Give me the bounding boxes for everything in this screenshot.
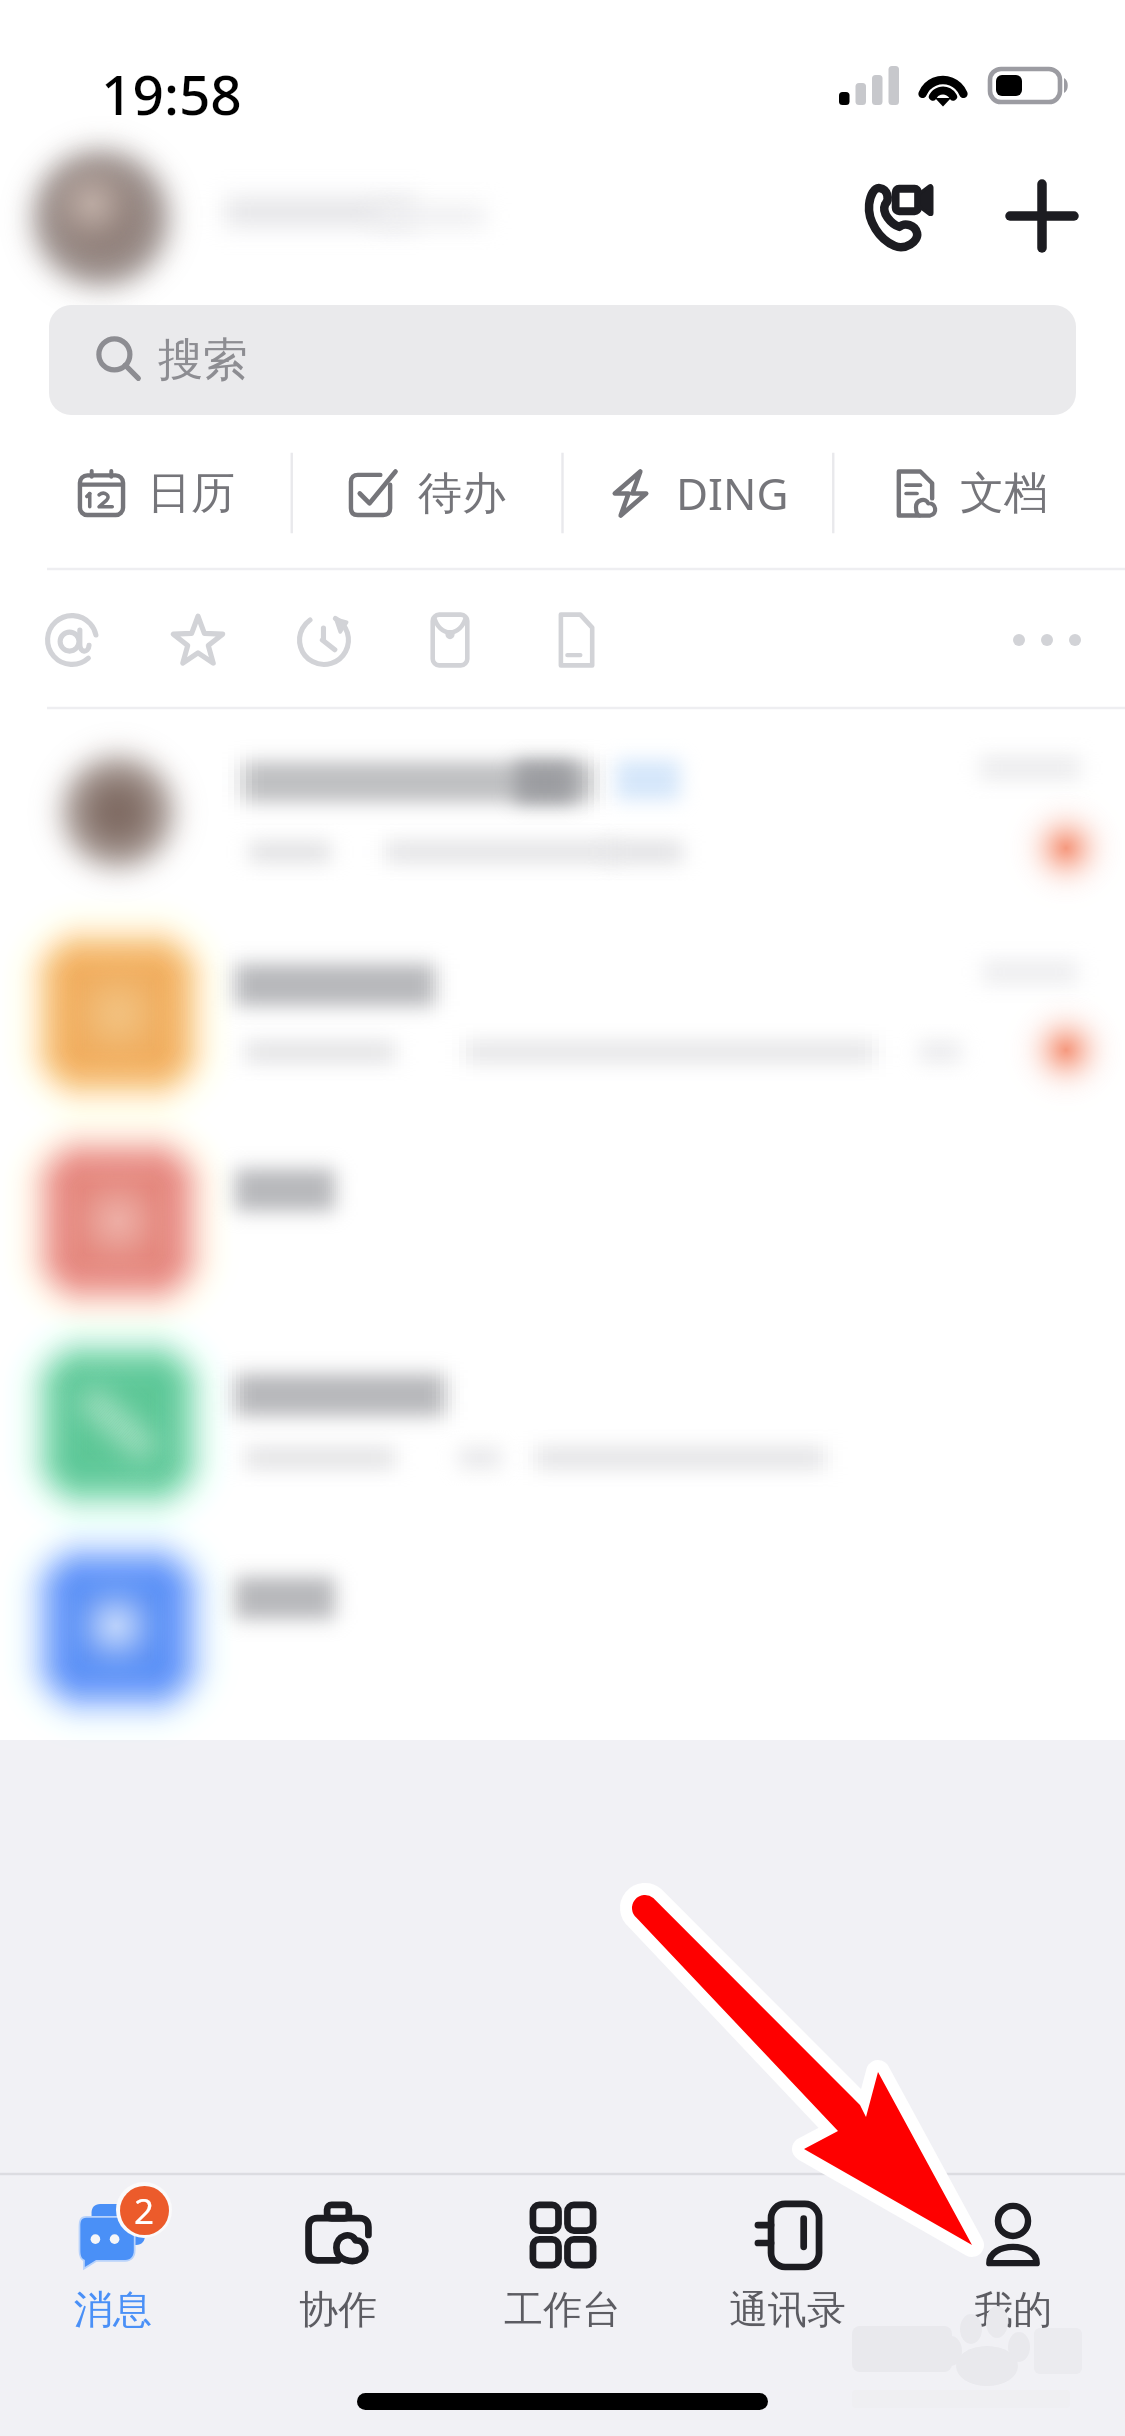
- button[interactable]: 搜索: [49, 305, 1076, 415]
- button[interactable]: 2: [0, 2173, 225, 2353]
- staticText: 通讯录: [729, 2285, 846, 2334]
- button[interactable]: Add: [977, 151, 1107, 281]
- button[interactable]: DING: [562, 432, 833, 554]
- staticText: 文档: [960, 466, 1048, 521]
- button[interactable]: 通讯录: [675, 2173, 900, 2353]
- staticText: 协作: [299, 2285, 377, 2334]
- button[interactable]: 待办: [291, 432, 562, 554]
- button[interactable]: 日历: [21, 432, 291, 554]
- staticText: 我的: [974, 2285, 1052, 2334]
- button[interactable]: 文档: [833, 432, 1104, 554]
- staticText: 搜索: [158, 332, 248, 389]
- staticText: 工作台: [504, 2285, 621, 2334]
- button[interactable]: 协作: [225, 2173, 450, 2353]
- button[interactable]: More: [1002, 595, 1092, 685]
- staticText: 消息: [74, 2285, 152, 2334]
- button[interactable]: Mentions: [27, 595, 117, 685]
- button[interactable]: Conversation: [0, 712, 1125, 912]
- staticText: 19:58: [101, 56, 242, 131]
- button[interactable]: Files: [531, 595, 621, 685]
- button[interactable]: Red packet: [405, 595, 495, 685]
- staticText: 2: [134, 2187, 155, 2235]
- button[interactable]: Conversation: [0, 1121, 1125, 1321]
- button[interactable]: Conversation: [0, 1324, 1125, 1524]
- button[interactable]: Profile: [28, 148, 176, 296]
- button[interactable]: Recent: [279, 595, 369, 685]
- button[interactable]: Conversation: [0, 1528, 1125, 1728]
- button[interactable]: Conversation: [0, 914, 1125, 1114]
- button[interactable]: 工作台: [450, 2173, 675, 2353]
- button[interactable]: 我的: [900, 2173, 1125, 2353]
- button[interactable]: Starred: [153, 595, 243, 685]
- staticText: 待办: [418, 466, 506, 521]
- button[interactable]: Video call: [832, 152, 962, 282]
- staticText: 日历: [147, 466, 235, 521]
- staticText: DING: [676, 463, 789, 523]
